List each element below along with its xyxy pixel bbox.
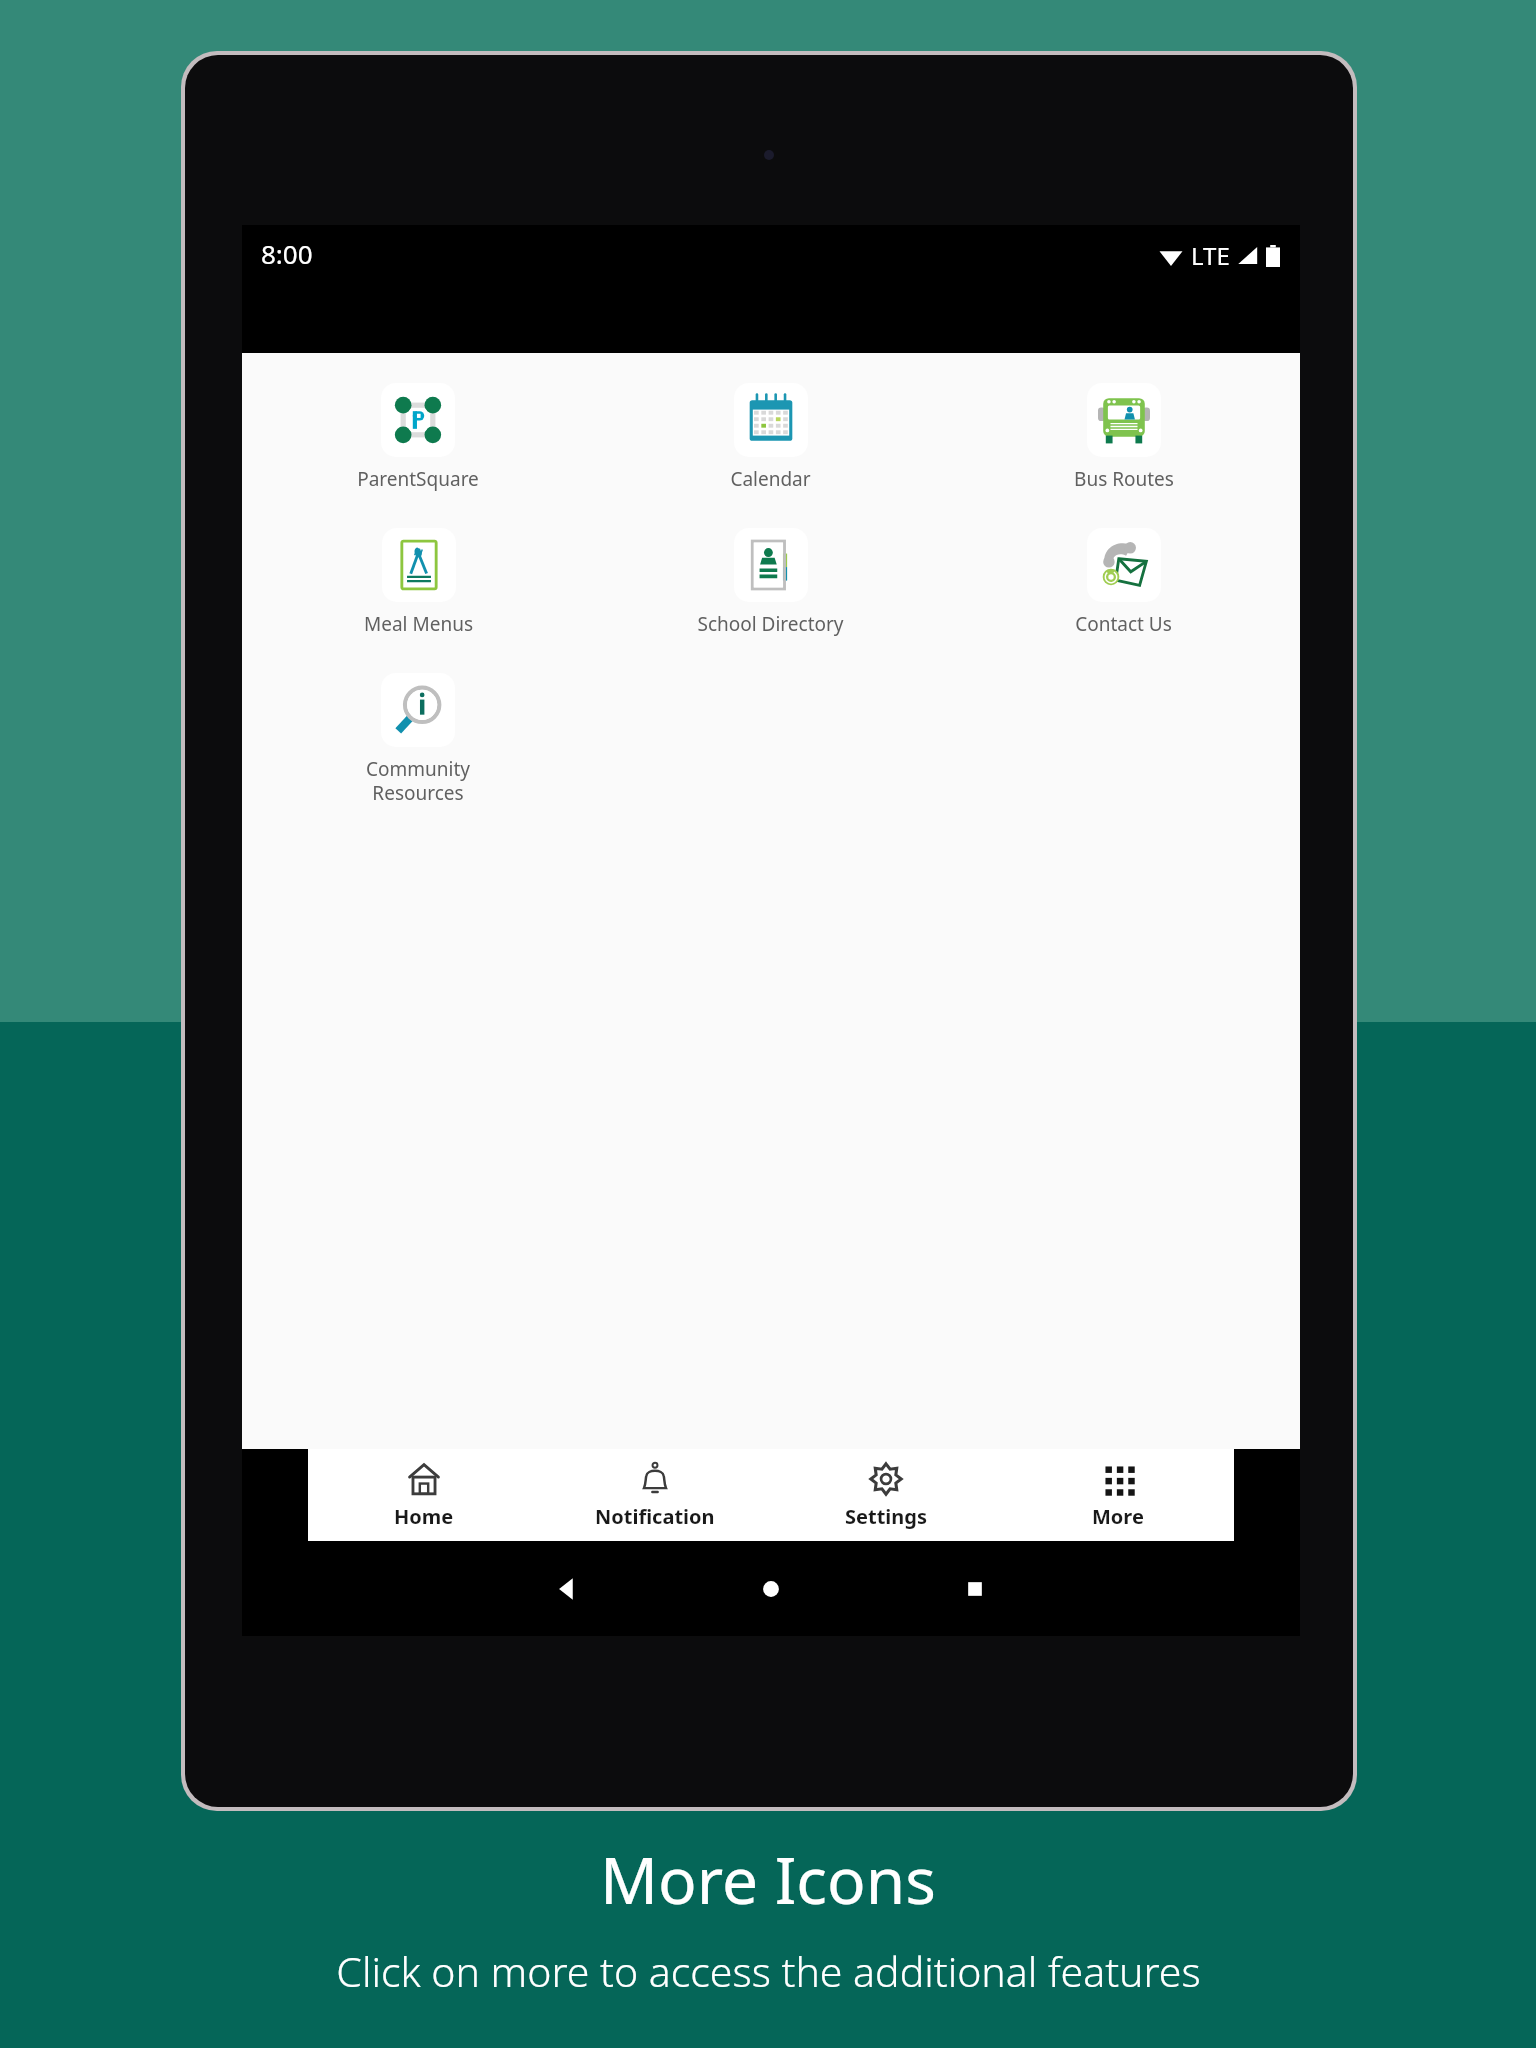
staticText: Click on more to access the additional f… — [336, 1943, 1201, 1999]
staticText: More — [1092, 1503, 1144, 1530]
staticText: 8:00 — [261, 236, 313, 271]
staticText: LTE — [1191, 239, 1230, 272]
button[interactable]: Settings — [770, 1449, 1002, 1541]
button[interactable]: More — [1002, 1449, 1234, 1541]
staticText: Meal Menus — [364, 611, 473, 637]
button[interactable]: Bus Routes — [1068, 383, 1180, 492]
staticText: Calendar — [730, 466, 811, 492]
button[interactable]: Calendar — [724, 383, 817, 492]
staticText: School Directory — [697, 611, 844, 637]
button[interactable]: Meal Menus — [358, 528, 479, 637]
button[interactable]: Home — [753, 1571, 789, 1607]
button[interactable]: Recents — [957, 1571, 993, 1607]
staticText: ParentSquare — [357, 466, 479, 492]
staticText: Bus Routes — [1074, 466, 1174, 492]
button[interactable]: Back — [549, 1571, 585, 1607]
staticText: Contact Us — [1075, 611, 1172, 637]
staticText: Community Resources — [366, 756, 470, 805]
button[interactable]: Home — [308, 1449, 539, 1541]
staticText: Notification — [595, 1503, 715, 1530]
button[interactable]: Notification — [539, 1449, 770, 1541]
staticText: Home — [394, 1503, 454, 1530]
button[interactable]: Contact Us — [1069, 528, 1178, 637]
staticText: More Icons — [600, 1836, 936, 1923]
button[interactable]: ParentSquare — [351, 383, 485, 492]
staticText: Settings — [845, 1503, 927, 1530]
button[interactable]: Community Resources — [360, 673, 476, 805]
button[interactable]: School Directory — [691, 528, 850, 637]
